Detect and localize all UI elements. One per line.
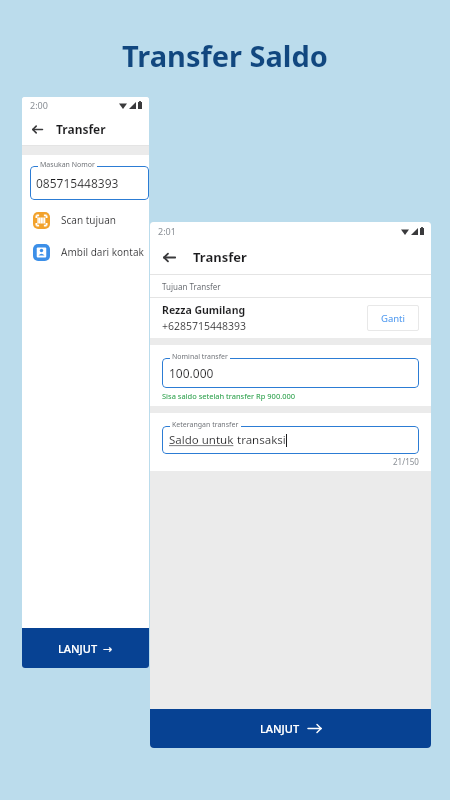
staticText: +6285715448393 — [162, 319, 247, 333]
staticText: Keterangan transfer — [172, 420, 239, 430]
staticText: Saldo untuk — [169, 432, 234, 448]
staticText: 2:00 — [30, 99, 48, 111]
button[interactable]: Scan tujuan — [22, 208, 149, 232]
button[interactable]: Back — [162, 250, 177, 265]
staticText: 100.000 — [169, 365, 214, 381]
staticText: LANJUT → — [58, 641, 113, 656]
button[interactable]: 085715448393 — [30, 166, 149, 200]
button[interactable]: Ganti — [367, 305, 419, 331]
staticText: Ganti — [381, 312, 405, 325]
staticText: 2:01 — [158, 225, 176, 237]
staticText: Nominal transfer — [172, 352, 228, 362]
staticText: transaksi — [234, 432, 286, 448]
staticText: Ambil dari kontak — [61, 245, 144, 259]
staticText: Masukan Nomor — [40, 160, 95, 170]
staticText: Transfer — [56, 121, 106, 137]
staticText: Rezza Gumilang — [162, 303, 246, 317]
button[interactable]: LANJUT — [150, 709, 431, 748]
staticText: Transfer — [193, 248, 247, 266]
button[interactable]: 100.000 — [162, 358, 419, 388]
staticText: Scan tujuan — [61, 213, 117, 227]
staticText: Tujuan Transfer — [162, 281, 221, 292]
staticText: 21/150 — [393, 456, 419, 467]
staticText: Transfer Saldo — [122, 36, 328, 75]
button[interactable]: LANJUT → — [22, 628, 149, 668]
button[interactable]: Ambil dari kontak — [22, 240, 149, 264]
staticText: Sisa saldo setelah transfer Rp 900.000 — [162, 391, 296, 401]
staticText: 085715448393 — [36, 175, 119, 191]
button[interactable]: Saldo untuk — [162, 426, 419, 454]
staticText: LANJUT — [260, 721, 300, 736]
button[interactable]: Back — [31, 123, 44, 136]
